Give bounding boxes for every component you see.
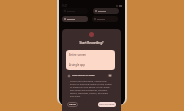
staticText: Start Recording? <box>62 41 121 45</box>
button[interactable] <box>62 8 88 14</box>
button[interactable]: Entire screen <box>66 50 115 60</box>
staticText: Show touches on screen <box>72 74 95 77</box>
staticText: 9:41 <box>62 4 68 8</box>
button[interactable] <box>92 16 118 22</box>
button[interactable]: Cancel <box>67 102 78 107</box>
staticText: While you're recording, Android has acce… <box>70 80 112 98</box>
button[interactable] <box>62 16 88 22</box>
other: Screen record <box>89 32 94 37</box>
button[interactable] <box>93 8 119 14</box>
button[interactable]: A single app <box>66 60 115 70</box>
staticText: A single app <box>69 63 86 67</box>
button[interactable]: Start recording <box>98 102 116 107</box>
button[interactable]: Show touches on screen <box>68 73 112 78</box>
staticText: Entire screen <box>69 53 87 57</box>
staticText: Start recording <box>99 103 115 106</box>
staticText: Cancel <box>69 103 76 106</box>
